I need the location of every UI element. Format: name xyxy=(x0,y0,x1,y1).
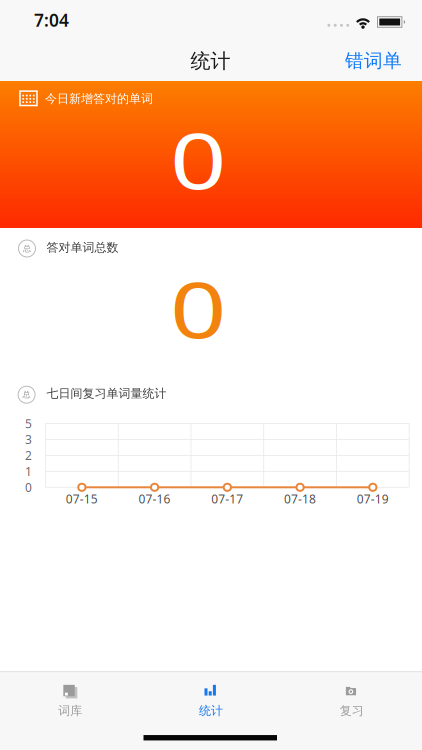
staticText: 07-19 xyxy=(357,491,389,507)
staticText: 1 xyxy=(25,463,32,479)
staticText: 07-16 xyxy=(139,491,171,507)
staticText: 07-15 xyxy=(66,491,98,507)
staticText: 总 xyxy=(23,390,31,400)
button[interactable]: 统计 xyxy=(141,671,281,750)
staticText: 复习 xyxy=(340,703,364,718)
staticText: 0 xyxy=(176,109,219,210)
staticText: 错词单 xyxy=(345,49,402,72)
staticText: 07-18 xyxy=(284,491,316,507)
staticText: 07-17 xyxy=(211,491,243,507)
staticText: 七日间复习单词量统计 xyxy=(46,386,166,401)
staticText: 统计 xyxy=(190,49,230,73)
staticText: 7:04 xyxy=(34,8,69,31)
staticText: 3 xyxy=(25,431,32,447)
staticText: 统计 xyxy=(199,703,223,718)
staticText: 0 xyxy=(25,479,32,495)
staticText: 0 xyxy=(176,258,219,359)
staticText: 5 xyxy=(25,415,32,431)
staticText: 词库 xyxy=(58,703,82,718)
staticText: 2 xyxy=(25,447,32,463)
button[interactable]: 复习 xyxy=(281,671,422,750)
staticText: 今日新增答对的单词 xyxy=(45,91,153,106)
button[interactable]: 错词单 xyxy=(322,46,402,76)
staticText: 总 xyxy=(23,244,31,253)
button[interactable]: 词库 xyxy=(0,671,141,750)
staticText: 答对单词总数 xyxy=(46,240,118,255)
